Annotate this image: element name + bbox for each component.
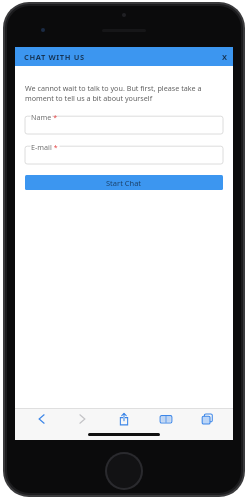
button[interactable]: E-mail * [25,142,223,164]
staticText: We cannot wait to talk to you. But first… [25,83,223,103]
button[interactable]: Name * [25,112,223,134]
button[interactable]: CHAT WITH US [15,47,233,66]
staticText: Start Chat [106,178,142,188]
button[interactable]: Close chat [217,49,233,65]
button[interactable]: Tabs [195,408,219,430]
button[interactable]: Back [29,408,53,430]
button[interactable]: Forward [71,408,95,430]
staticText: X [222,52,228,62]
staticText: Name * [31,112,57,122]
button[interactable]: Start Chat [25,175,223,190]
staticText: E-mail * [31,142,58,152]
button[interactable]: Share [112,408,136,430]
staticText: CHAT WITH US [24,52,85,62]
button[interactable]: Bookmarks [154,408,178,430]
